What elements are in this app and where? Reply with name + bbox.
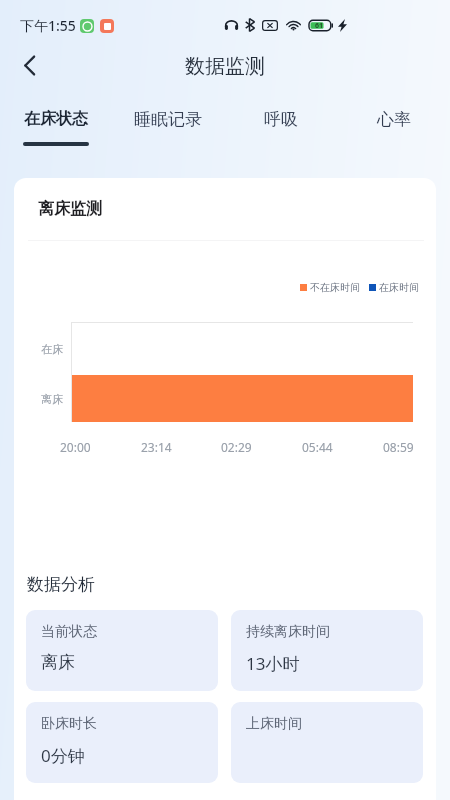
- staticText: 离床监测: [38, 199, 102, 219]
- staticText: 数据监测: [185, 54, 265, 79]
- button[interactable]: 上床时间: [231, 702, 423, 783]
- button[interactable]: 持续离床时间: [231, 610, 423, 691]
- staticText: 下午1:55: [20, 16, 76, 35]
- staticText: 数据分析: [27, 574, 95, 595]
- staticText: 上床时间: [246, 715, 302, 733]
- staticText: 卧床时长: [41, 715, 97, 733]
- button[interactable]: 呼吸: [224, 96, 337, 152]
- staticText: 在床时间: [379, 281, 419, 294]
- staticText: 20:00: [60, 439, 91, 455]
- button[interactable]: 睡眠记录: [112, 96, 224, 152]
- staticText: 不在床时间: [310, 281, 360, 294]
- button[interactable]: 卧床时长: [26, 702, 218, 783]
- staticText: 05:44: [302, 439, 333, 455]
- button[interactable]: 心率: [337, 96, 450, 152]
- staticText: 在床: [41, 342, 63, 356]
- staticText: 02:29: [221, 439, 252, 455]
- staticText: 持续离床时间: [246, 623, 330, 641]
- button[interactable]: 当前状态: [26, 610, 218, 691]
- staticText: 23:14: [141, 439, 172, 455]
- staticText: 当前状态: [41, 623, 97, 641]
- staticText: 在床状态: [24, 109, 88, 129]
- staticText: 61: [315, 21, 324, 31]
- staticText: 08:59: [383, 439, 414, 455]
- staticText: 呼吸: [264, 109, 298, 130]
- staticText: 离床: [41, 392, 63, 406]
- staticText: 睡眠记录: [134, 109, 202, 130]
- staticText: 心率: [377, 109, 411, 130]
- button[interactable]: 在床状态: [0, 96, 112, 152]
- button[interactable]: Back: [9, 45, 49, 85]
- staticText: 离床: [41, 652, 75, 673]
- staticText: 13小时: [246, 652, 300, 675]
- staticText: 0分钟: [41, 744, 85, 767]
